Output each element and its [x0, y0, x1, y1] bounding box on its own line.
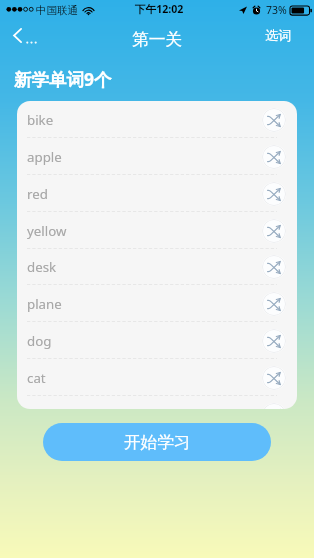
button[interactable]: Shuffle — [262, 219, 286, 243]
staticText: 中国联通 — [36, 4, 78, 17]
staticText: 下午12:02 — [135, 2, 184, 16]
button[interactable]: dog — [17, 322, 297, 359]
staticText: 第一关 — [132, 29, 183, 50]
staticText: 73% — [266, 3, 287, 17]
button[interactable]: yellow — [17, 212, 297, 249]
button[interactable]: cat — [17, 359, 297, 396]
button[interactable]: 开始学习 — [43, 423, 271, 461]
staticText: 选词 — [265, 27, 292, 44]
button[interactable]: red — [17, 175, 297, 212]
button[interactable]: bus — [17, 396, 297, 409]
staticText: apple — [27, 148, 62, 166]
staticText: 新学单词9个 — [14, 67, 112, 91]
button[interactable]: desk — [17, 248, 297, 285]
button[interactable]: Shuffle — [262, 366, 286, 390]
staticText: cat — [27, 369, 46, 387]
button[interactable]: Shuffle — [262, 329, 286, 353]
staticText: yellow — [27, 222, 67, 240]
button[interactable]: 选词 — [243, 20, 314, 56]
button[interactable]: Shuffle — [262, 182, 286, 206]
button[interactable]: Shuffle — [262, 292, 286, 316]
button[interactable]: Shuffle — [262, 403, 286, 409]
button[interactable]: apple — [17, 138, 297, 175]
staticText: 开始学习 — [124, 432, 191, 453]
button[interactable]: Shuffle — [262, 145, 286, 169]
staticText: red — [27, 185, 48, 203]
staticText: bike — [27, 111, 54, 129]
staticText: desk — [27, 258, 57, 276]
staticText: dog — [27, 332, 52, 350]
button[interactable]: Shuffle — [262, 108, 286, 132]
button[interactable]: Shuffle — [262, 255, 286, 279]
button[interactable]: Back — [0, 20, 52, 56]
staticText: plane — [27, 295, 62, 313]
button[interactable]: bike — [17, 101, 297, 138]
button[interactable]: plane — [17, 285, 297, 322]
